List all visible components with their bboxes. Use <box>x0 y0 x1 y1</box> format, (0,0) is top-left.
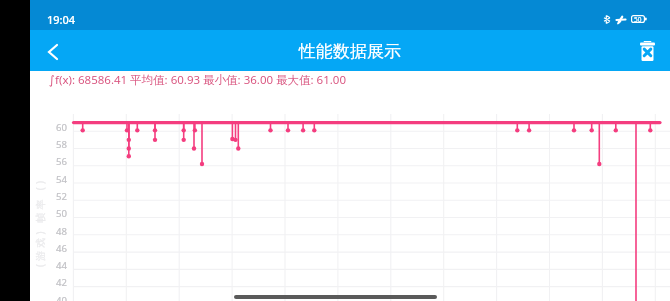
button[interactable]: Delete <box>629 33 665 69</box>
staticText: 性能数据展示 <box>299 41 401 62</box>
staticText: 48 <box>56 225 67 238</box>
staticText: 50 <box>634 15 642 23</box>
button[interactable]: Back <box>35 34 71 70</box>
staticText: 19:04 <box>47 12 76 27</box>
staticText: 44 <box>56 259 67 272</box>
staticText: 46 <box>56 242 67 255</box>
staticText: 60 <box>56 121 67 134</box>
staticText: 40 <box>56 294 67 301</box>
staticText: 54 <box>56 173 67 186</box>
staticText: 50 <box>56 207 67 220</box>
staticText: 56 <box>56 155 67 168</box>
staticText: ∫f(x): 68586.41 平均值: 60.93 最小值: 36.00 最大… <box>49 72 346 88</box>
staticText: 52 <box>56 190 67 203</box>
staticText: (游戏) 帧率 () <box>33 177 47 267</box>
staticText: 42 <box>56 276 67 289</box>
staticText: 58 <box>56 138 67 151</box>
